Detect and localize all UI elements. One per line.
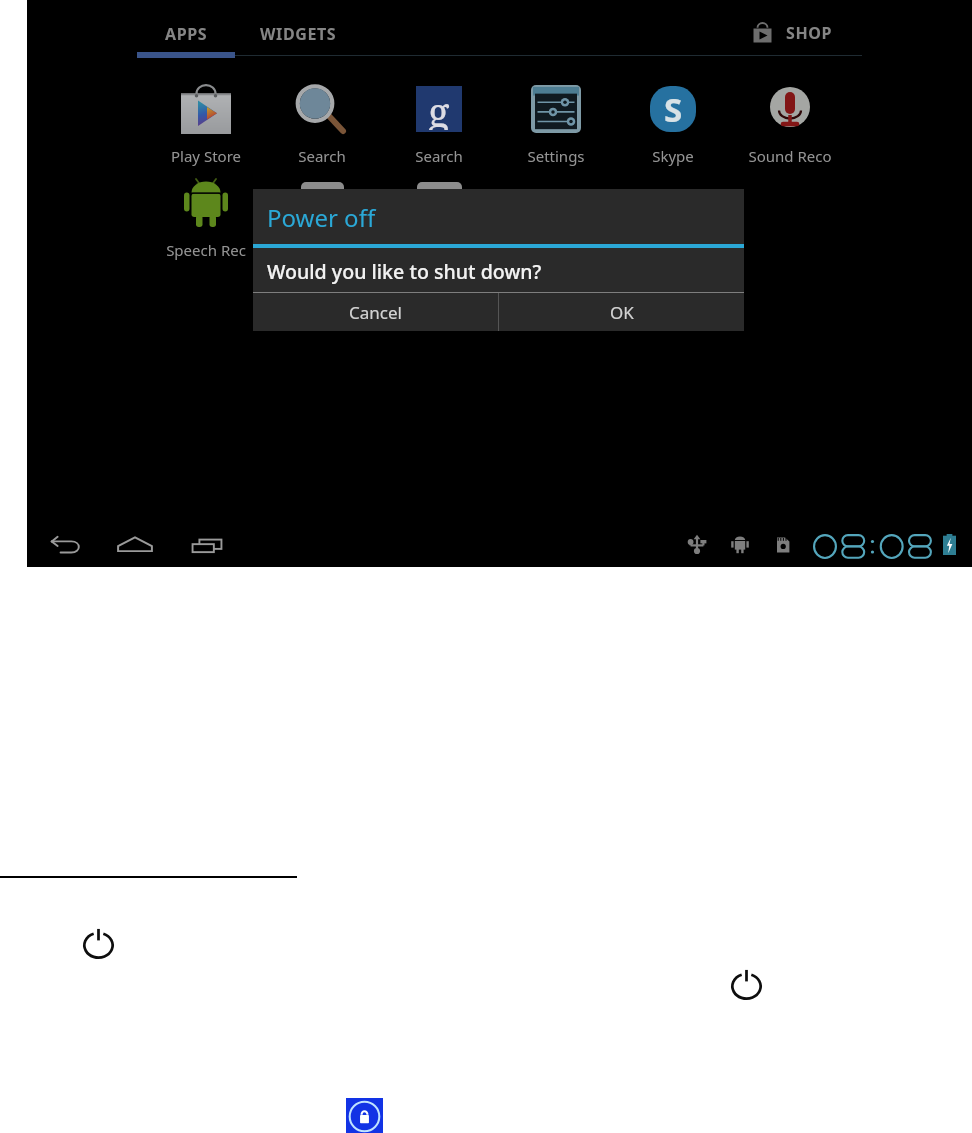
staticText: Would you like to shut down? xyxy=(267,258,542,285)
staticText: g xyxy=(428,84,450,130)
staticText: Search xyxy=(298,146,346,166)
button[interactable]: S xyxy=(617,84,729,166)
button[interactable]: Search xyxy=(266,84,378,166)
button[interactable]: Play Store xyxy=(150,84,262,166)
staticText: SHOP xyxy=(786,22,833,44)
button[interactable]: Speech Rec xyxy=(150,178,262,260)
button[interactable]: WIDGETS xyxy=(238,15,359,53)
button[interactable]: Cancel xyxy=(253,293,498,331)
button[interactable]: g xyxy=(383,84,495,166)
staticText: S xyxy=(664,87,683,132)
staticText: Speech Rec xyxy=(166,240,246,260)
staticText: Skype xyxy=(652,146,694,166)
button[interactable]: Back xyxy=(48,529,85,566)
staticText: Play Store xyxy=(171,146,241,166)
button[interactable]: Settings xyxy=(500,84,612,166)
button[interactable]: Home xyxy=(116,527,154,565)
staticText: Power off xyxy=(267,201,376,234)
button[interactable]: OK xyxy=(499,293,744,331)
button[interactable]: Sound Reco xyxy=(734,84,846,166)
staticText: Settings xyxy=(527,146,585,166)
button[interactable]: Shop xyxy=(750,14,833,52)
staticText: OK xyxy=(610,301,634,324)
staticText: Sound Reco xyxy=(748,146,832,166)
other: Shop xyxy=(750,21,775,46)
staticText: Search xyxy=(415,146,463,166)
staticText: WIDGETS xyxy=(260,23,337,45)
staticText: APPS xyxy=(165,23,208,45)
button[interactable]: Recent apps xyxy=(188,528,226,566)
staticText: Cancel xyxy=(349,301,402,324)
button[interactable]: APPS xyxy=(134,15,238,53)
